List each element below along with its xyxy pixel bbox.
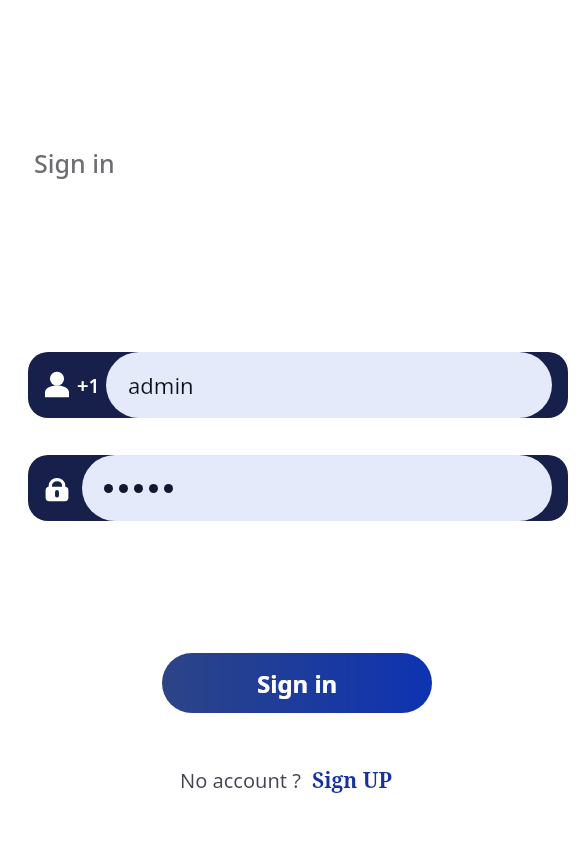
button[interactable]: Account	[28, 352, 568, 418]
button[interactable]: admin	[106, 352, 552, 418]
staticText: No account ?	[180, 767, 301, 794]
button[interactable]: Sign UP	[312, 766, 392, 795]
button[interactable]: Sign in	[162, 653, 432, 713]
staticText: +1	[77, 372, 100, 399]
button[interactable]	[82, 455, 552, 521]
other: Password	[42, 473, 72, 503]
button[interactable]: Password	[28, 455, 568, 521]
staticText: Sign in	[34, 146, 115, 180]
staticText: Sign UP	[312, 766, 392, 795]
staticText: admin	[128, 370, 194, 400]
staticText: Sign in	[257, 667, 338, 700]
other: Account	[42, 370, 72, 400]
